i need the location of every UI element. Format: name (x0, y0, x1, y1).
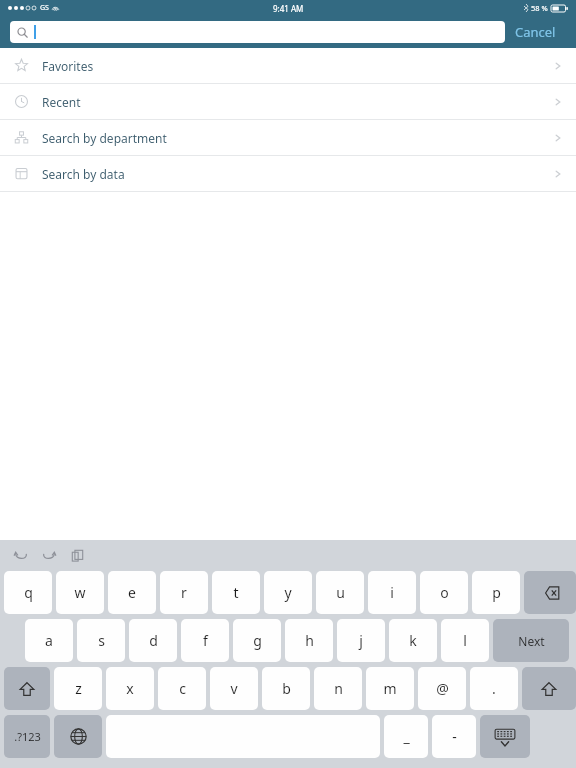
button[interactable]: o (420, 571, 468, 614)
staticText: y (284, 583, 292, 602)
button[interactable]: Hide keyboard (480, 715, 530, 758)
staticText: @ (436, 679, 449, 698)
staticText: .?123 (14, 729, 41, 744)
button[interactable]: a (25, 619, 73, 662)
button[interactable]: _ (384, 715, 428, 758)
button[interactable]: l (441, 619, 489, 662)
staticText: e (128, 583, 136, 602)
button[interactable]: x (106, 667, 154, 710)
button[interactable]: Shift (522, 667, 576, 710)
button[interactable]: j (337, 619, 385, 662)
button[interactable]: d (129, 619, 177, 662)
staticText: c (179, 679, 186, 698)
button[interactable]: Shift (4, 667, 50, 710)
button[interactable]: Search by department (0, 120, 576, 155)
button[interactable]: t (212, 571, 260, 614)
staticText: _ (403, 727, 410, 746)
staticText: f (203, 631, 208, 650)
button[interactable]: Undo (10, 544, 32, 566)
button[interactable]: g (233, 619, 281, 662)
staticText: x (126, 679, 134, 698)
button[interactable]: s (77, 619, 125, 662)
button[interactable]: k (389, 619, 437, 662)
button[interactable]: h (285, 619, 333, 662)
staticText: p (492, 583, 501, 602)
button[interactable]: Paste (66, 544, 88, 566)
staticText: Favorites (42, 58, 94, 74)
button[interactable]: - (432, 715, 476, 758)
staticText: v (230, 679, 238, 698)
button[interactable]: n (314, 667, 362, 710)
staticText: d (149, 631, 158, 650)
staticText: s (98, 631, 105, 650)
button[interactable]: b (262, 667, 310, 710)
button[interactable]: Cancel (505, 19, 566, 45)
button[interactable]: Favorites (0, 48, 576, 83)
staticText: Search by department (42, 130, 167, 146)
button[interactable]: u (316, 571, 364, 614)
staticText: w (74, 583, 86, 602)
button[interactable]: e (108, 571, 156, 614)
staticText: u (336, 583, 345, 602)
button[interactable]: q (4, 571, 52, 614)
button[interactable]: v (210, 667, 258, 710)
button[interactable]: @ (418, 667, 466, 710)
staticText: Next (518, 633, 545, 649)
staticText: l (463, 631, 467, 650)
staticText: 58 % (531, 3, 548, 13)
staticText: g (253, 631, 262, 650)
staticText: o (440, 583, 449, 602)
button[interactable]: Next (493, 619, 569, 662)
staticText: Recent (42, 94, 81, 110)
staticText: q (24, 583, 33, 602)
button[interactable]: w (56, 571, 104, 614)
staticText: . (492, 679, 496, 698)
button[interactable]: y (264, 571, 312, 614)
staticText: Search by data (42, 166, 125, 182)
staticText: GS (40, 3, 49, 13)
button[interactable]: r (160, 571, 208, 614)
button[interactable]: z (54, 667, 102, 710)
staticText: z (75, 679, 82, 698)
staticText: t (233, 583, 239, 602)
button[interactable]: Recent (0, 84, 576, 119)
staticText: m (383, 679, 397, 698)
staticText: i (390, 583, 394, 602)
button[interactable]: c (158, 667, 206, 710)
button[interactable]: Change keyboard (54, 715, 102, 758)
staticText: - (452, 727, 457, 746)
staticText: h (305, 631, 314, 650)
staticText: Cancel (515, 23, 556, 41)
staticText: n (334, 679, 343, 698)
staticText: k (409, 631, 417, 650)
button[interactable]: m (366, 667, 414, 710)
button[interactable]: . (470, 667, 518, 710)
button[interactable]: Search by data (0, 156, 576, 191)
staticText: 9:41 AM (273, 3, 304, 14)
staticText: r (181, 583, 187, 602)
button[interactable] (10, 21, 505, 43)
button[interactable]: Backspace (524, 571, 576, 614)
button[interactable]: .?123 (4, 715, 50, 758)
button[interactable]: p (472, 571, 520, 614)
button[interactable]: i (368, 571, 416, 614)
staticText: a (45, 631, 53, 650)
button[interactable]: Redo (38, 544, 60, 566)
staticText: j (359, 631, 363, 650)
staticText: b (282, 679, 291, 698)
button[interactable]: f (181, 619, 229, 662)
